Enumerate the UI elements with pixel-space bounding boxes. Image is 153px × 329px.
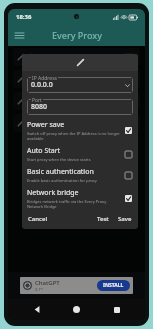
staticText: Network bridge bbox=[27, 188, 79, 198]
button[interactable]: Power save bbox=[124, 126, 133, 135]
button[interactable]: Back bbox=[27, 299, 48, 320]
staticText: 8080 bbox=[31, 102, 48, 112]
button[interactable]: Open navigation menu bbox=[11, 27, 28, 44]
button[interactable]: Basic authentication bbox=[124, 171, 133, 180]
staticText: Bridges network traffic via the Every Pr… bbox=[27, 199, 120, 209]
staticText: Power save bbox=[27, 120, 65, 130]
staticText: Start proxy when the device starts bbox=[27, 157, 91, 162]
button[interactable]: Bridge bbox=[13, 114, 140, 132]
staticText: Test bbox=[97, 215, 109, 223]
staticText: 18:36 bbox=[16, 13, 32, 21]
button[interactable]: 0.0.0.0 bbox=[27, 77, 133, 93]
staticText: Switch off proxy when the IP Address is … bbox=[27, 131, 120, 141]
button[interactable]: Toggle SOCKS Proxy bbox=[122, 75, 136, 83]
staticText: Enable basic authentication for proxy bbox=[27, 178, 97, 183]
staticText: DNS Proxy bbox=[39, 96, 74, 106]
button[interactable]: Auto Start bbox=[124, 150, 133, 159]
staticText: Save bbox=[118, 215, 132, 223]
staticText: IP Address bbox=[32, 75, 57, 82]
staticText: SOCKS Proxy bbox=[39, 74, 82, 84]
staticText: 3.7* bbox=[35, 287, 43, 292]
button[interactable]: Toggle HTTP Proxy bbox=[122, 53, 136, 61]
button[interactable]: Cancel bbox=[27, 214, 49, 224]
staticText: INSTALL bbox=[103, 282, 124, 289]
button[interactable]: ChatGPT bbox=[20, 277, 133, 294]
button[interactable]: Basic authentication bbox=[27, 166, 133, 184]
staticText: Cancel bbox=[28, 215, 48, 223]
button[interactable]: 8080 bbox=[27, 99, 133, 115]
button[interactable]: Recent apps bbox=[106, 299, 127, 320]
button[interactable]: HTTP Proxy bbox=[13, 48, 140, 66]
staticText: 0.0.0.0 bbox=[31, 80, 53, 90]
button[interactable]: Home bbox=[66, 299, 87, 320]
button[interactable]: DNS Proxy bbox=[13, 92, 140, 110]
button[interactable]: Network bridge bbox=[27, 187, 133, 210]
staticText: Basic authentication bbox=[27, 167, 94, 177]
button[interactable]: INSTALL bbox=[97, 280, 130, 291]
button[interactable]: Auto Start bbox=[27, 145, 133, 163]
button[interactable]: Toggle DNS Proxy bbox=[122, 97, 136, 105]
staticText: Every Proxy bbox=[52, 29, 102, 41]
staticText: Auto Start bbox=[27, 146, 61, 156]
staticText: ChatGPT bbox=[35, 279, 60, 287]
staticText: Port bbox=[32, 97, 42, 104]
button[interactable]: Power save bbox=[27, 119, 133, 142]
staticText: HTTP Proxy bbox=[39, 52, 77, 62]
button[interactable]: Network bridge bbox=[124, 194, 133, 203]
button[interactable]: Test bbox=[96, 214, 110, 224]
staticText: Bridge bbox=[39, 118, 61, 128]
button[interactable]: Save bbox=[117, 214, 133, 224]
button[interactable]: SOCKS Proxy bbox=[13, 70, 140, 88]
